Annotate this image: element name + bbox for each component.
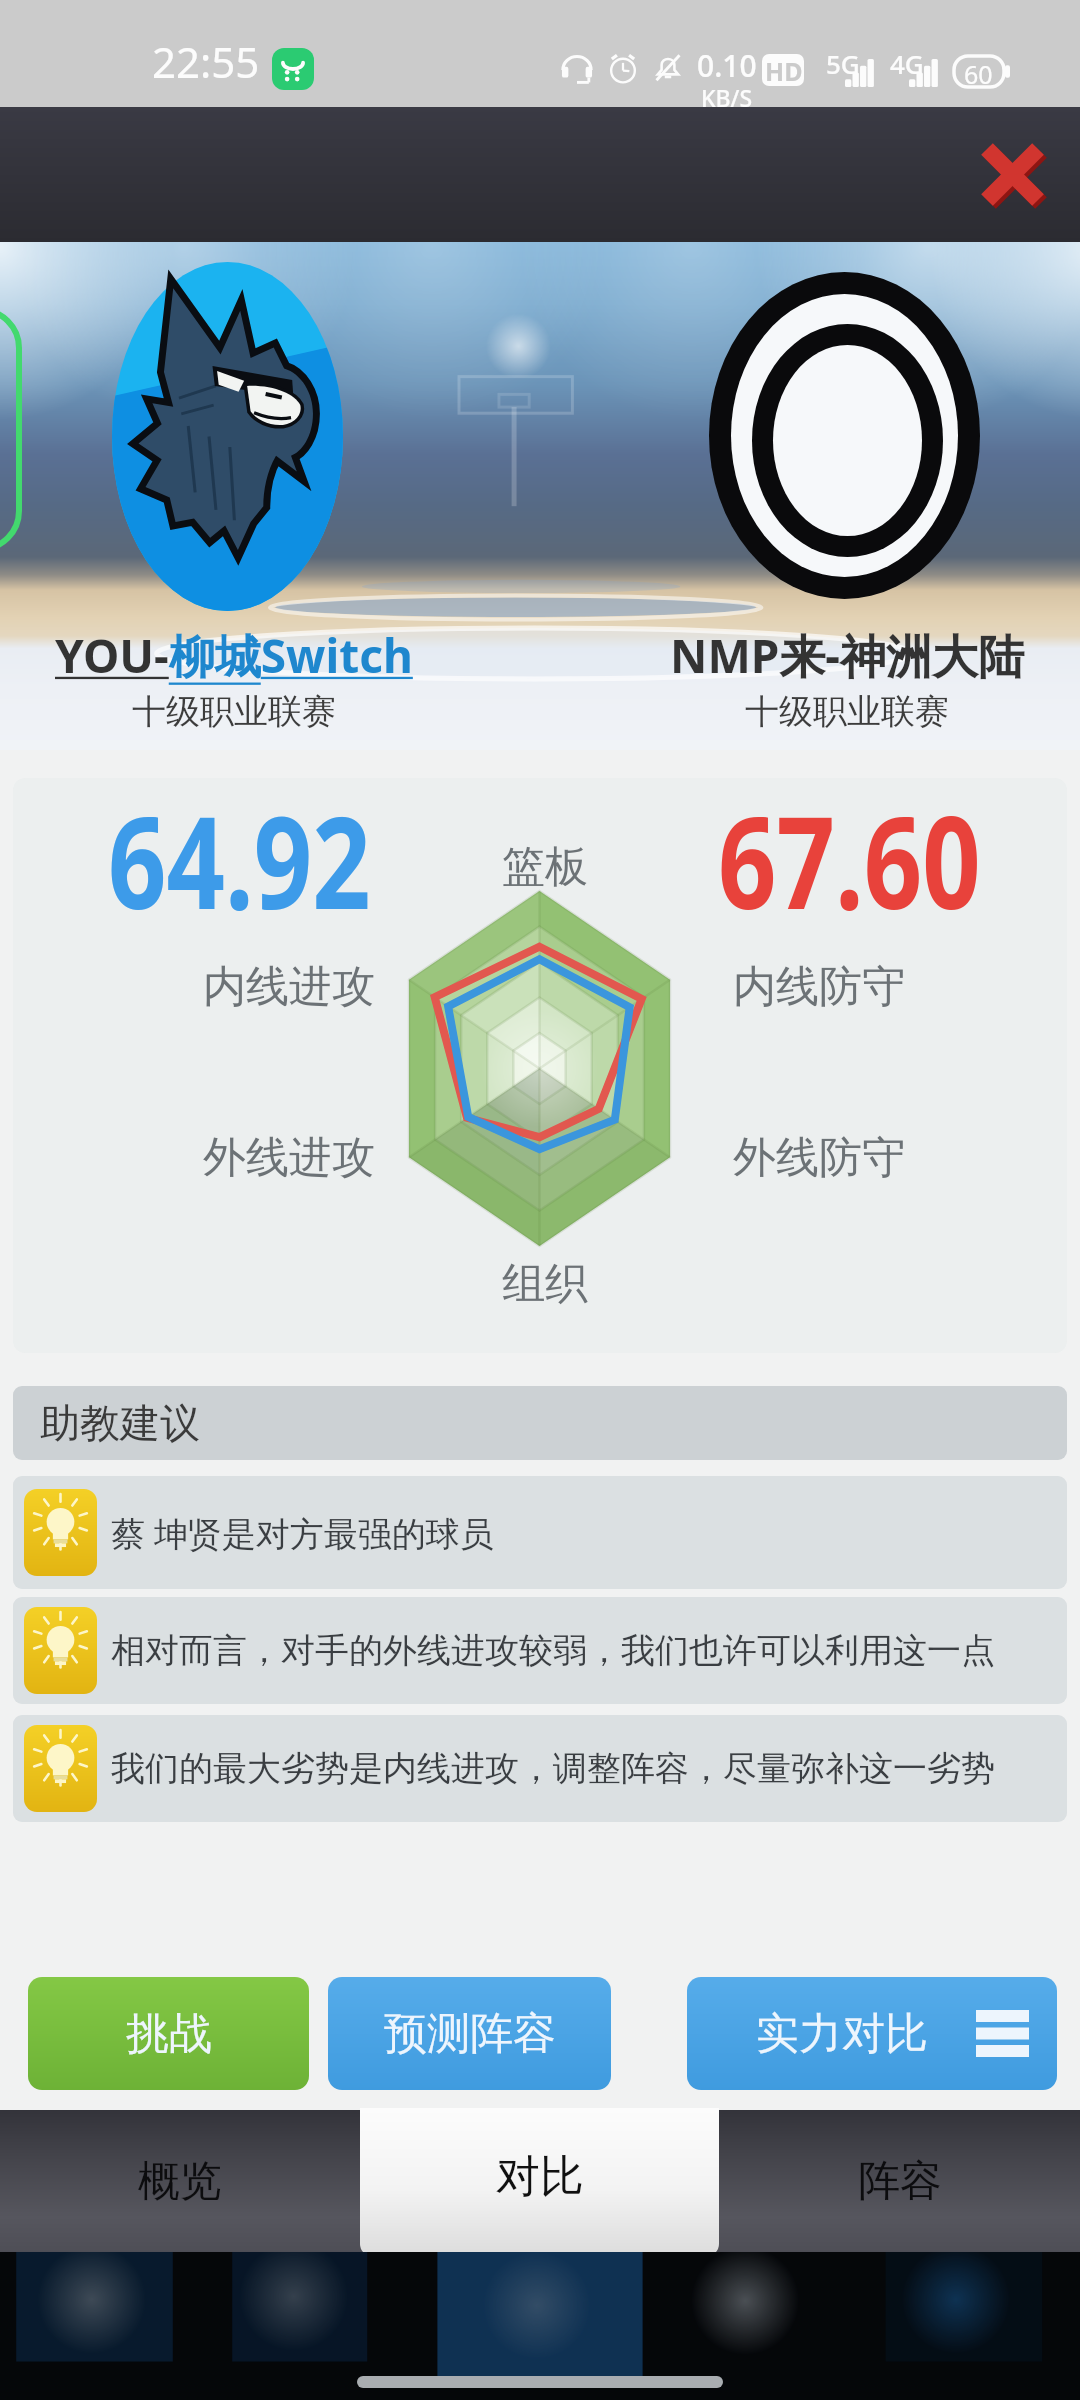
staticText: 相对而言，对手的外线进攻较弱，我们也许可以利用这一点 xyxy=(111,1629,995,1672)
staticText: 蔡 坤贤是对方最强的球员 xyxy=(111,1510,494,1556)
staticText: YOU-柳城Switch xyxy=(55,624,413,687)
staticText: 篮板 xyxy=(502,840,588,894)
staticText: 内线进攻 xyxy=(203,960,375,1014)
button[interactable]: 实力对比 xyxy=(687,1977,1057,2090)
staticText: 预测阵容 xyxy=(384,2007,556,2061)
staticText: 我们的最大劣势是内线进攻，调整阵容，尽量弥补这一劣势 xyxy=(111,1747,995,1790)
staticText: 5G xyxy=(826,46,860,81)
button[interactable]: 挑战 xyxy=(28,1977,309,2090)
staticText: 阵容 xyxy=(858,2155,942,2208)
staticText: 22:55 xyxy=(152,33,260,90)
staticText: 十级职业联赛 xyxy=(132,690,336,733)
staticText: 60 xyxy=(964,57,993,91)
button[interactable]: 相对而言，对手的外线进攻较弱，我们也许可以利用这一点 xyxy=(13,1597,1067,1704)
button[interactable]: 我们的最大劣势是内线进攻，调整阵容，尽量弥补这一劣势 xyxy=(13,1715,1067,1822)
staticText: 助教建议 xyxy=(40,1398,200,1448)
button[interactable]: 蔡 坤贤是对方最强的球员 xyxy=(13,1476,1067,1589)
button[interactable]: 阵容 xyxy=(719,2110,1080,2253)
staticText: 0.10 xyxy=(697,45,757,86)
staticText: 67.60 xyxy=(718,778,981,946)
staticText: NMP来-神洲大陆 xyxy=(670,624,1025,687)
button[interactable]: 预测阵容 xyxy=(328,1977,611,2090)
staticText: KB/S xyxy=(701,82,753,113)
staticText: 实力对比 xyxy=(756,2007,928,2061)
staticText: 64.92 xyxy=(108,778,371,946)
button[interactable]: 概览 xyxy=(0,2110,360,2253)
staticText: 内线防守 xyxy=(733,960,905,1014)
staticText: 外线进攻 xyxy=(203,1131,375,1185)
staticText: 4G xyxy=(890,46,924,81)
staticText: 概览 xyxy=(138,2155,222,2208)
staticText: 十级职业联赛 xyxy=(745,690,949,733)
button[interactable]: 对比 xyxy=(360,2108,719,2256)
staticText: 外线防守 xyxy=(733,1131,905,1185)
button[interactable]: Close xyxy=(975,137,1050,212)
staticText: HD xyxy=(765,54,803,86)
staticText: 组织 xyxy=(502,1257,588,1311)
staticText: 对比 xyxy=(496,2149,584,2204)
staticText: 挑战 xyxy=(126,2007,212,2061)
